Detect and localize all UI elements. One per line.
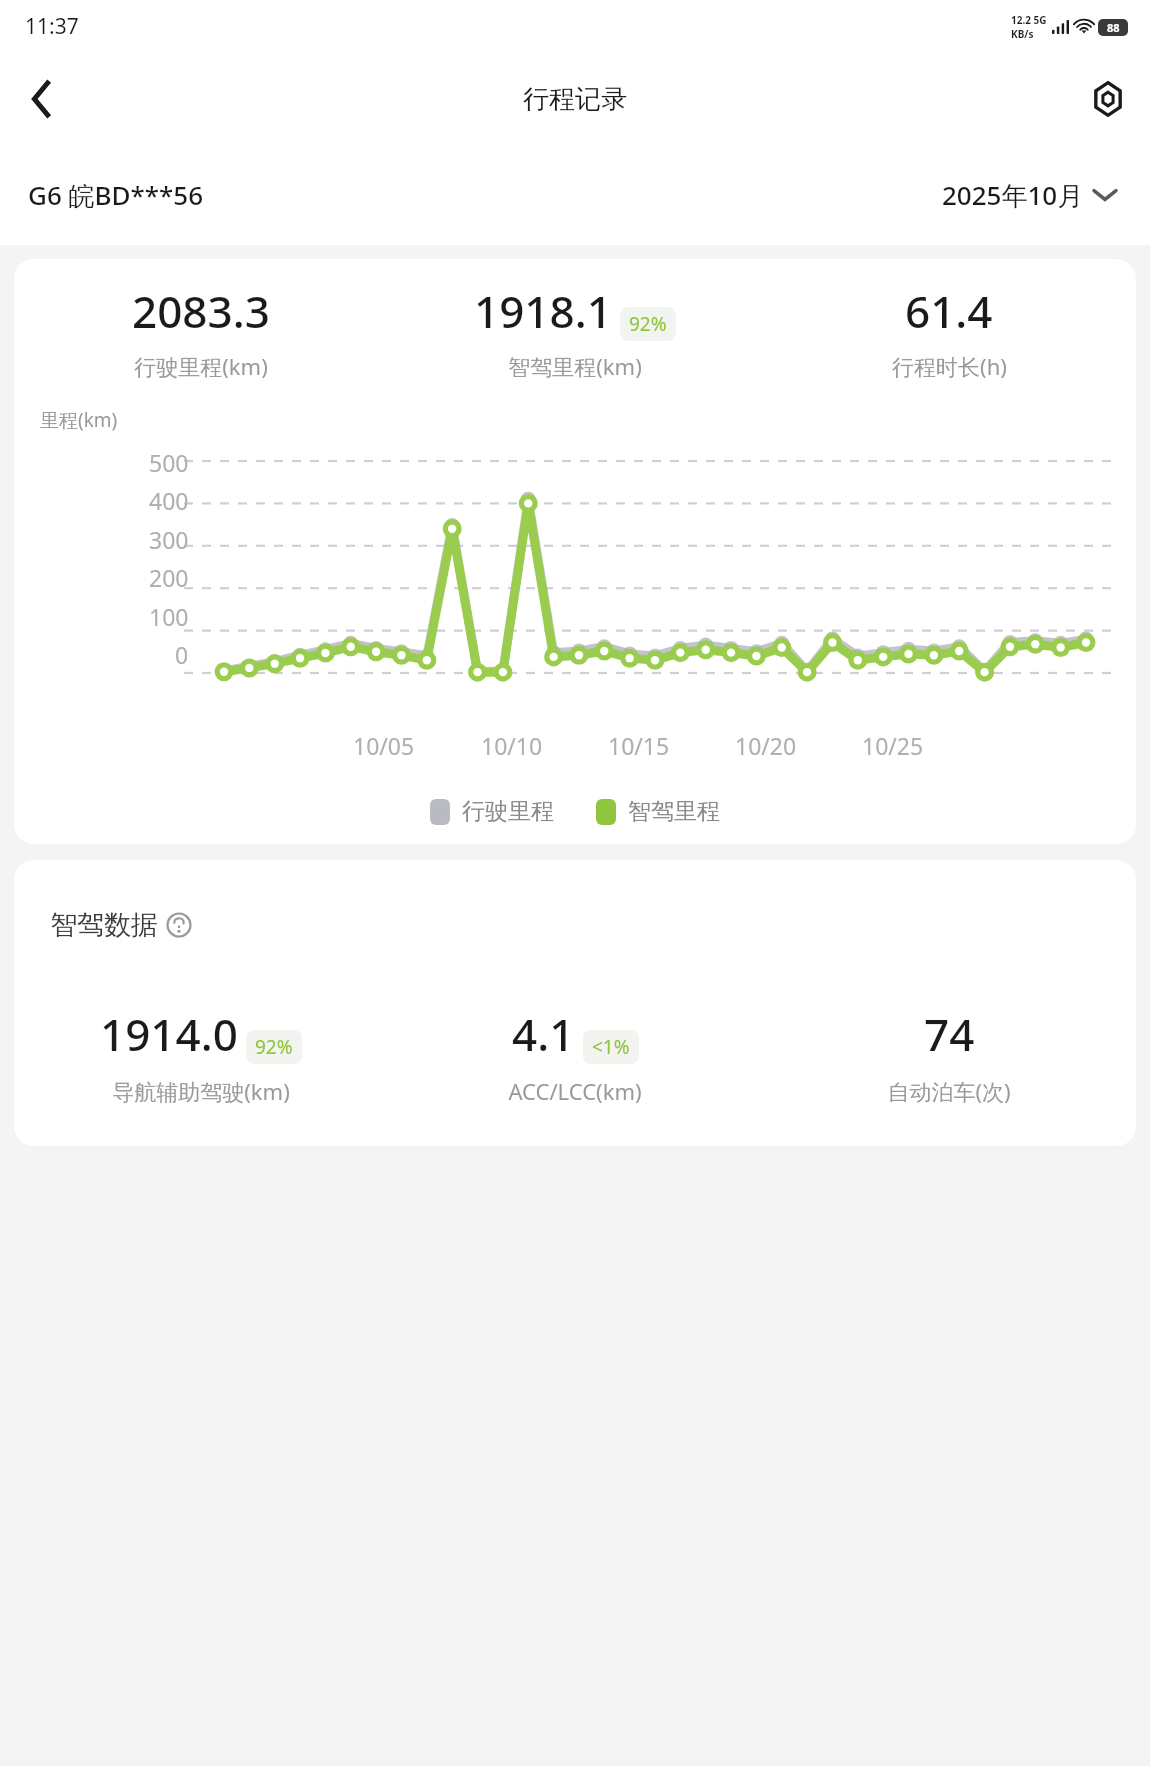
staticText: 1914.0 xyxy=(100,1004,238,1064)
staticText: 自动泊车(次) xyxy=(887,1076,1011,1106)
staticText: 10/10 xyxy=(481,730,543,761)
staticText: 智驾里程(km) xyxy=(508,351,642,381)
staticText: 智驾里程 xyxy=(628,797,720,826)
staticText: ACC/LCC(km) xyxy=(508,1076,642,1106)
button[interactable]: Back xyxy=(14,71,70,127)
staticText: 10/20 xyxy=(735,730,797,761)
staticText: <1% xyxy=(592,1034,630,1060)
staticText: 11:37 xyxy=(25,12,79,41)
staticText: 100 xyxy=(149,601,189,632)
staticText: 2025年10月 xyxy=(942,177,1084,213)
staticText: 300 xyxy=(149,524,189,555)
staticText: 导航辅助驾驶(km) xyxy=(112,1076,290,1106)
staticText: 里程(km) xyxy=(40,407,118,433)
staticText: 500 xyxy=(149,447,189,478)
staticText: 行程记录 xyxy=(523,83,627,116)
staticText: 400 xyxy=(149,485,189,516)
button[interactable]: Settings xyxy=(1080,71,1136,127)
staticText: G6 皖BD***56 xyxy=(28,177,204,213)
staticText: 10/05 xyxy=(353,730,415,761)
staticText: 92% xyxy=(255,1034,293,1060)
staticText: KB/s xyxy=(1011,27,1034,41)
staticText: 行驶里程 xyxy=(462,797,554,826)
button[interactable]: 2083.3 xyxy=(14,259,1136,844)
other: Info xyxy=(166,912,192,938)
staticText: 行驶里程(km) xyxy=(134,351,268,381)
button[interactable]: 智驾数据 xyxy=(14,860,1136,1146)
staticText: 4.1 xyxy=(512,1004,575,1064)
staticText: 1918.1 xyxy=(474,281,612,341)
staticText: 0 xyxy=(175,639,189,670)
staticText: 10/25 xyxy=(862,730,924,761)
staticText: 92% xyxy=(629,311,667,337)
button[interactable]: 2025年10月 xyxy=(936,171,1122,219)
button[interactable]: 智驾数据 xyxy=(50,908,192,942)
staticText: 200 xyxy=(149,562,189,593)
staticText: 10/15 xyxy=(608,730,670,761)
staticText: 12.2 5G xyxy=(1011,13,1047,27)
staticText: 61.4 xyxy=(905,281,993,341)
staticText: 2083.3 xyxy=(132,281,270,341)
staticText: 88 xyxy=(1107,20,1120,35)
staticText: 智驾数据 xyxy=(50,908,158,942)
staticText: 74 xyxy=(924,1004,975,1064)
staticText: 行程时长(h) xyxy=(892,351,1007,381)
